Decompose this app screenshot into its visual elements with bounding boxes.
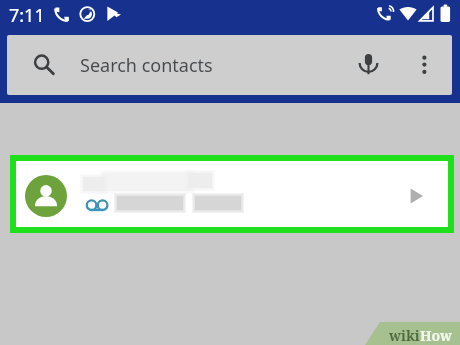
staticText: How xyxy=(420,326,453,345)
button[interactable]: More options xyxy=(414,49,436,83)
button[interactable]: Voice search xyxy=(355,49,383,83)
staticText: wiki xyxy=(389,326,420,345)
button[interactable]: Search contacts xyxy=(7,35,452,95)
staticText: 7:11 xyxy=(9,3,45,28)
button[interactable]: Open contact xyxy=(402,182,430,210)
button[interactable]: Open contact xyxy=(16,161,448,227)
staticText: Search contacts xyxy=(80,53,213,78)
